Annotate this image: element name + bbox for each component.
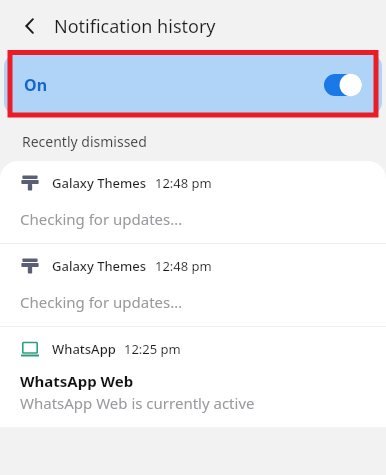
button[interactable]: Galaxy Themes [0, 161, 386, 243]
button[interactable]: WhatsApp [0, 327, 386, 427]
staticText: 12:25 pm [124, 340, 181, 358]
staticText: Checking for updates… [20, 292, 183, 312]
staticText: WhatsApp [52, 340, 116, 358]
staticText: WhatsApp Web is currently active [20, 393, 255, 413]
button[interactable]: Notification history on [324, 74, 362, 96]
staticText: Checking for updates… [20, 209, 183, 229]
staticText: On [24, 74, 48, 96]
staticText: Recently dismissed [22, 132, 147, 151]
staticText: Notification history [54, 14, 216, 39]
staticText: WhatsApp Web [20, 371, 134, 391]
staticText: 12:48 pm [155, 174, 212, 192]
staticText: Galaxy Themes [52, 257, 147, 275]
button[interactable]: Back [10, 6, 50, 46]
button[interactable]: On [4, 53, 382, 116]
staticText: Galaxy Themes [52, 174, 147, 192]
button[interactable]: Galaxy Themes [0, 244, 386, 326]
staticText: 12:48 pm [155, 257, 212, 275]
